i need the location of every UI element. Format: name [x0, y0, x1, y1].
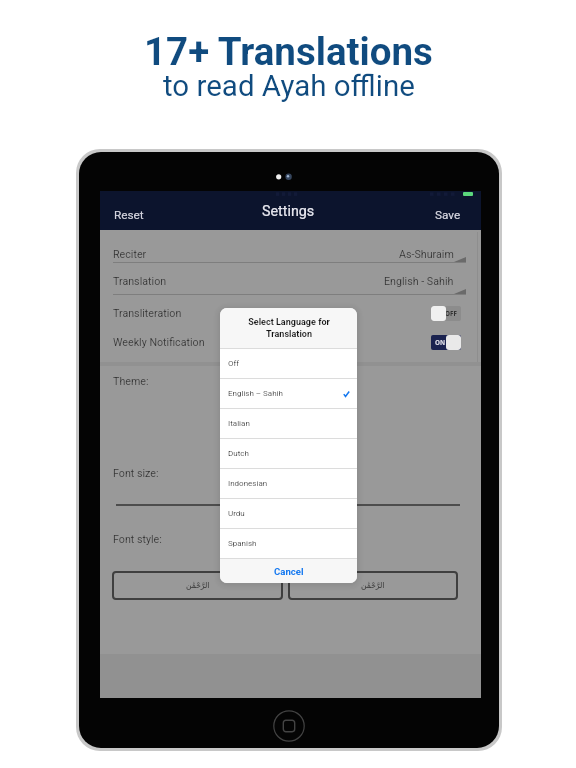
button[interactable]: Dutch [220, 439, 357, 468]
button[interactable]: Translation [100, 268, 481, 294]
staticText: Weekly Notification [113, 336, 205, 349]
button[interactable]: Indonesian [220, 469, 357, 498]
button[interactable]: Italian [220, 409, 357, 438]
button[interactable]: Save [430, 204, 466, 226]
staticText: Reciter [113, 248, 147, 261]
staticText: Cancel [274, 566, 304, 577]
button[interactable]: الرَّحْمَٰن [288, 571, 458, 600]
button[interactable]: Urdu [220, 499, 357, 528]
button[interactable]: English – Sahih [220, 379, 357, 408]
staticText: OFF [445, 309, 457, 318]
staticText: الرَّحْمَٰن [186, 581, 210, 590]
staticText: Font style: [113, 533, 162, 546]
staticText: to read Ayah offline [163, 69, 415, 104]
button[interactable]: Transliteration off [431, 306, 461, 321]
staticText: Select Language for Translation [248, 317, 330, 339]
staticText: Settings [262, 203, 315, 220]
button[interactable]: Spanish [220, 529, 357, 558]
staticText: Urdu [228, 509, 245, 518]
staticText: الرَّحْمَٰن [361, 581, 385, 590]
staticText: As-Shuraim [399, 248, 454, 261]
button[interactable]: Off [220, 349, 357, 378]
staticText: Font size: [113, 467, 159, 480]
staticText: ON [435, 338, 446, 347]
staticText: Save [435, 208, 461, 222]
button[interactable]: Reset [109, 204, 149, 226]
staticText: Theme: [113, 375, 149, 388]
staticText: Reset [114, 208, 144, 222]
staticText: Translation [113, 275, 167, 288]
staticText: Italian [228, 419, 250, 428]
staticText: 17+ Translations [144, 29, 433, 74]
staticText: English - Sahih [384, 275, 454, 288]
staticText: Transliteration [113, 307, 182, 320]
staticText: English – Sahih [228, 389, 283, 398]
button[interactable]: Cancel [220, 559, 357, 583]
staticText: Off [228, 359, 240, 368]
button[interactable]: Weekly notification on [431, 335, 461, 350]
staticText: Dutch [228, 449, 249, 458]
button[interactable]: الرَّحْمَٰن [112, 571, 283, 600]
staticText: Spanish [228, 539, 257, 548]
button[interactable]: Reciter [100, 241, 481, 267]
staticText: Indonesian [228, 479, 268, 488]
